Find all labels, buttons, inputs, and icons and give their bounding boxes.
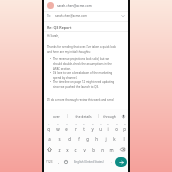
staticText: g bbox=[86, 136, 89, 142]
button[interactable]: 5 bbox=[80, 122, 88, 133]
staticText: sarah.chen@acme.com bbox=[55, 14, 87, 18]
staticText: 8 bbox=[107, 123, 109, 126]
button[interactable]: v bbox=[80, 144, 89, 155]
staticText: b bbox=[92, 147, 95, 153]
button[interactable]: Voice input bbox=[119, 112, 127, 120]
staticText: q bbox=[47, 126, 50, 132]
staticText: , bbox=[58, 159, 60, 164]
button[interactable]: h bbox=[92, 133, 101, 144]
staticText: o bbox=[115, 126, 118, 132]
button[interactable]: c bbox=[71, 144, 80, 155]
staticText: i bbox=[107, 126, 109, 132]
staticText: c bbox=[74, 147, 77, 153]
staticText: through bbox=[103, 114, 116, 118]
staticText: English (United States) bbox=[74, 160, 104, 164]
button[interactable]: 4 bbox=[71, 122, 80, 133]
staticText: h bbox=[95, 136, 98, 142]
staticText: 9 bbox=[116, 123, 118, 126]
staticText: The timeline on page 12 might need updat… bbox=[53, 80, 115, 89]
button[interactable]: Shift bbox=[44, 144, 55, 155]
button[interactable]: ?123 bbox=[44, 155, 55, 168]
button[interactable]: z bbox=[55, 144, 63, 155]
staticText: u bbox=[99, 126, 102, 132]
button[interactable]: 9 bbox=[112, 122, 120, 133]
staticText: I'd love to see a breakdown of the marke… bbox=[53, 71, 113, 80]
staticText: r bbox=[75, 126, 77, 132]
button[interactable]: 3 bbox=[62, 122, 71, 133]
button[interactable]: Emoji bbox=[62, 155, 70, 168]
button[interactable]: m bbox=[107, 144, 116, 155]
staticText: 0 bbox=[124, 123, 126, 126]
button[interactable]: f bbox=[74, 133, 83, 144]
button[interactable]: x bbox=[63, 144, 71, 155]
button[interactable]: j bbox=[101, 133, 110, 144]
staticText: Re: Q3 Report bbox=[47, 25, 72, 30]
staticText: • bbox=[50, 80, 52, 84]
staticText: the details bbox=[75, 114, 92, 118]
staticText: 4 bbox=[75, 123, 77, 126]
staticText: ?123 bbox=[46, 160, 53, 164]
staticText: over bbox=[53, 114, 60, 118]
staticText: To bbox=[47, 14, 51, 18]
staticText: k bbox=[113, 136, 116, 142]
staticText: Hi Sarah, bbox=[47, 34, 59, 38]
staticText: f bbox=[78, 136, 80, 142]
button[interactable]: the details bbox=[68, 109, 98, 122]
staticText: a bbox=[48, 136, 51, 142]
staticText: e bbox=[65, 126, 68, 132]
button[interactable]: g bbox=[83, 133, 92, 144]
staticText: • bbox=[50, 71, 52, 75]
staticText: 6 bbox=[92, 123, 94, 126]
button[interactable]: 8 bbox=[104, 122, 112, 133]
button[interactable]: 0 bbox=[120, 122, 128, 133]
button[interactable]: Enter bbox=[115, 157, 127, 167]
button[interactable]: 6 bbox=[88, 122, 96, 133]
button[interactable]: d bbox=[64, 133, 74, 144]
staticText: I'll do a more thorough review this week… bbox=[47, 98, 114, 102]
staticText: j bbox=[105, 136, 107, 142]
staticText: 2 bbox=[57, 123, 59, 126]
staticText: t bbox=[83, 126, 85, 132]
staticText: v bbox=[83, 147, 86, 153]
staticText: 1 bbox=[48, 123, 50, 126]
staticText: y bbox=[91, 126, 94, 132]
button[interactable]: sarah.chen@acme.com bbox=[47, 1, 125, 10]
button[interactable]: l bbox=[119, 133, 128, 144]
button[interactable]: 2 bbox=[53, 122, 62, 133]
staticText: sarah.chen@acme.com bbox=[57, 4, 92, 8]
staticText: z bbox=[58, 147, 61, 153]
staticText: n bbox=[101, 147, 104, 153]
other: Expand recipients bbox=[121, 14, 125, 18]
staticText: The revenue projections look solid, but … bbox=[53, 57, 112, 71]
staticText: d bbox=[68, 136, 71, 142]
staticText: 3 bbox=[66, 123, 68, 126]
staticText: x bbox=[66, 147, 69, 153]
staticText: Thanks for sending that over. I've taken… bbox=[47, 45, 116, 54]
staticText: w bbox=[56, 126, 60, 132]
staticText: p bbox=[123, 126, 126, 132]
button[interactable]: k bbox=[110, 133, 119, 144]
button[interactable]: through bbox=[99, 109, 119, 122]
staticText: 7 bbox=[100, 123, 102, 126]
staticText: m bbox=[109, 147, 114, 153]
button[interactable]: To bbox=[47, 12, 125, 20]
button[interactable]: , bbox=[55, 155, 62, 168]
staticText: . bbox=[111, 159, 113, 164]
button[interactable]: n bbox=[98, 144, 107, 155]
staticText: 5 bbox=[83, 123, 85, 126]
button[interactable]: 1 bbox=[44, 122, 53, 133]
button[interactable]: s bbox=[54, 133, 64, 144]
button[interactable]: a bbox=[44, 133, 54, 144]
button[interactable]: over bbox=[46, 109, 67, 122]
button[interactable]: English (United States) bbox=[70, 155, 108, 168]
button[interactable]: b bbox=[89, 144, 98, 155]
staticText: • bbox=[50, 57, 52, 61]
staticText: s bbox=[58, 136, 61, 142]
button[interactable]: 7 bbox=[96, 122, 104, 133]
button[interactable]: Backspace bbox=[116, 144, 128, 155]
staticText: l bbox=[123, 136, 125, 142]
